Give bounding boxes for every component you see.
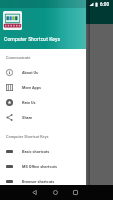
button[interactable]: MS Office shortcuts (0, 159, 86, 174)
button[interactable]: Recent apps (70, 185, 80, 200)
staticText: Rate Us (22, 100, 36, 105)
button[interactable]: Rate Us (0, 95, 86, 110)
button[interactable]: Browser shortcuts (0, 174, 86, 189)
staticText: Communicate (6, 55, 31, 60)
button[interactable]: More Apps (0, 80, 86, 95)
staticText: 6:00 (100, 2, 110, 7)
button[interactable]: Basic shortcuts (0, 144, 86, 159)
staticText: More Apps (22, 85, 41, 90)
button[interactable]: Back (29, 185, 39, 200)
staticText: Share (22, 115, 33, 120)
staticText: About Us (22, 70, 39, 75)
button[interactable]: About Us (0, 65, 86, 80)
staticText: Browser shortcuts (22, 179, 55, 184)
staticText: Basic shortcuts (22, 149, 50, 154)
staticText: Computer Shortcut Keys (4, 36, 61, 42)
button[interactable]: Home (50, 185, 60, 200)
button[interactable]: Share (0, 110, 86, 125)
staticText: MS Office shortcuts (22, 164, 57, 169)
staticText: Computer Shortcut Keys (6, 134, 49, 139)
